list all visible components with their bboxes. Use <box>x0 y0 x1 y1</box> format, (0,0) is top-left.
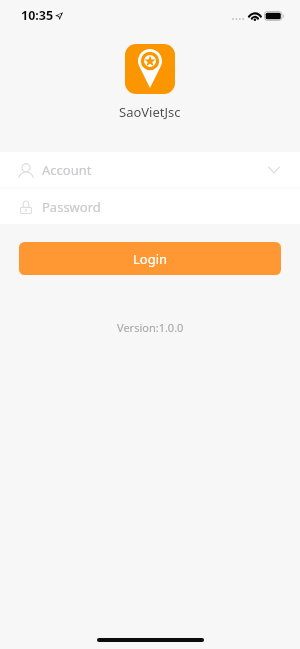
staticText: Password <box>42 198 101 216</box>
staticText: 10:35 <box>21 7 54 24</box>
staticText: Login <box>133 250 168 268</box>
button[interactable]: Login <box>19 242 281 275</box>
button[interactable]: SaoVietJsc logo <box>125 44 175 94</box>
button[interactable]: Account <box>0 152 300 187</box>
staticText: Version:1.0.0 <box>117 320 184 335</box>
other: Expand account list <box>268 166 280 174</box>
staticText: Account <box>42 161 92 179</box>
staticText: SaoVietJsc <box>119 103 181 121</box>
button[interactable]: Password <box>0 189 300 224</box>
